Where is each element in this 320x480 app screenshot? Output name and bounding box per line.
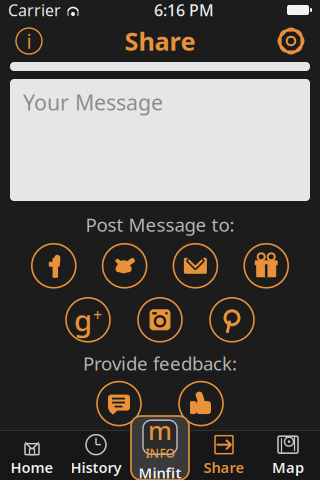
button[interactable]: Give a thumbs up <box>178 381 224 427</box>
staticText: Map <box>272 458 304 477</box>
button[interactable] <box>0 62 320 71</box>
button[interactable]: Map <box>256 430 320 480</box>
button[interactable]: Home <box>0 430 64 480</box>
staticText: Share <box>124 24 195 58</box>
staticText: Your Message <box>23 88 163 116</box>
staticText: INFO <box>145 445 174 461</box>
staticText: m <box>148 413 172 447</box>
button[interactable]: Share on Instagram <box>137 297 183 343</box>
staticText: Home <box>10 458 53 477</box>
button[interactable]: Your Message <box>0 79 320 201</box>
button[interactable]: Share by Email <box>172 243 218 289</box>
staticText: + <box>93 304 102 325</box>
staticText: Carrier <box>8 0 61 21</box>
staticText: History <box>70 458 121 477</box>
staticText: Provide feedback: <box>83 351 237 376</box>
staticText: Post Message to: <box>85 212 234 237</box>
button[interactable]: Share on Twitter <box>102 243 148 289</box>
button[interactable]: Share on Google Plus <box>65 297 111 343</box>
button[interactable]: Write a comment <box>96 381 142 427</box>
staticText: g <box>74 300 92 339</box>
button[interactable]: History <box>64 430 128 480</box>
button[interactable]: Info <box>0 21 48 61</box>
button[interactable]: Share <box>192 430 256 480</box>
button[interactable]: m <box>131 416 189 480</box>
staticText: 6:16 PM <box>154 0 214 21</box>
button[interactable]: Share on Pinterest <box>209 297 255 343</box>
staticText: Share <box>203 458 244 477</box>
staticText: i <box>26 28 31 54</box>
button[interactable]: Settings <box>272 21 320 61</box>
staticText: Minfit <box>138 463 181 480</box>
button[interactable]: Share on Facebook <box>31 243 77 289</box>
button[interactable]: Send a gift <box>243 243 289 289</box>
